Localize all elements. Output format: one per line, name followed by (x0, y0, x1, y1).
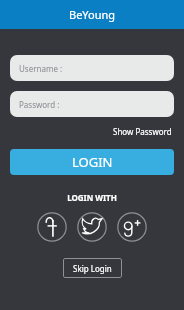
staticText: Username : (19, 63, 63, 74)
staticText: LOGIN (72, 153, 113, 171)
button[interactable]: Sign in with Twitter (77, 212, 107, 242)
staticText: Password : (19, 99, 60, 110)
button[interactable]: Show Password (111, 124, 174, 139)
button[interactable]: Sign in with Facebook (37, 212, 67, 242)
button[interactable]: Skip Login (63, 258, 122, 278)
button[interactable]: Username : (10, 55, 174, 81)
staticText: Show Password (113, 126, 172, 137)
button[interactable]: LOGIN (10, 149, 174, 175)
button[interactable]: Sign in with Google Plus (117, 212, 147, 242)
staticText: Skip Login (73, 263, 112, 274)
button[interactable]: Password : (10, 91, 174, 117)
staticText: BeYoung (69, 7, 116, 22)
staticText: LOGIN WITH (67, 192, 117, 203)
